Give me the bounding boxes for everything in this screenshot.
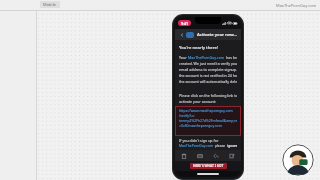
button[interactable]: Sender xyxy=(186,32,194,38)
staticText: please xyxy=(214,143,227,148)
staticText: MaxThePornGuy.com xyxy=(179,143,214,148)
staticText: MaxThePornGuy.com xyxy=(188,55,225,60)
staticText: tenmp2%2Fh27d%2Fmfmail&amp;ref xyxy=(179,118,237,123)
staticText: created. We just need to verify your xyxy=(179,61,237,66)
button[interactable]: Move to folder xyxy=(195,151,205,161)
button[interactable]: Mobile xyxy=(40,1,60,8)
button[interactable]: Reply xyxy=(211,151,221,161)
button[interactable]: Presenter camera xyxy=(282,144,314,176)
staticText: email address to complete signup. If xyxy=(179,67,237,72)
staticText: If you didn't sign up for xyxy=(179,138,219,143)
staticText: /verify?u= xyxy=(179,113,195,118)
staticText: the account will automatically delete. xyxy=(179,79,237,84)
staticText: 9:41 xyxy=(181,21,188,26)
staticText: ignore xyxy=(227,143,237,148)
staticText: https://www.maxthepornguy.com xyxy=(179,108,233,113)
staticText: activate your account: xyxy=(179,99,217,104)
staticText: MaxThePornGuy.com xyxy=(276,3,317,8)
staticText: Your xyxy=(179,55,188,60)
button[interactable]: Compose xyxy=(227,151,237,161)
staticText: HERE'S WHAT I GOT xyxy=(193,164,224,168)
staticText: the account is not verified in 24 hours xyxy=(179,73,237,78)
staticText: has been xyxy=(225,55,237,60)
button[interactable]: Delete xyxy=(179,151,189,161)
staticText: Mobile xyxy=(43,2,57,7)
staticText: Please click on the following link to xyxy=(179,93,237,98)
button[interactable]: https://www.maxthepornguy.com xyxy=(175,106,241,136)
button[interactable]: Back xyxy=(178,31,185,38)
staticText: =0x50maxthepornguy.com xyxy=(179,123,222,128)
staticText: Activate your new... xyxy=(197,32,238,38)
staticText: You're nearly there! xyxy=(179,45,218,51)
